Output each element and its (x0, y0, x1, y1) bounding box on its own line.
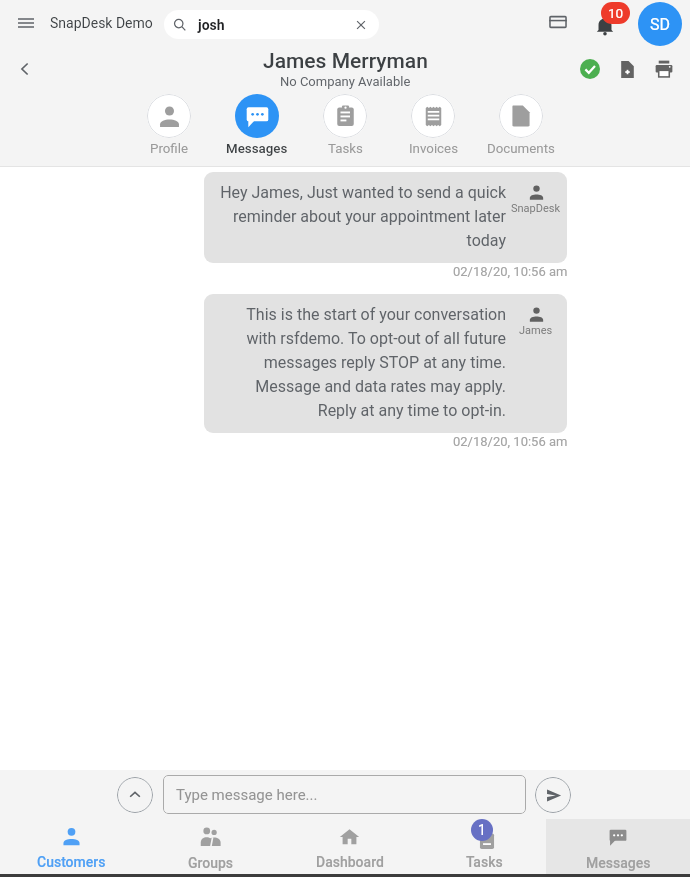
button[interactable]: Hey James, Just wanted to send a quick r… (204, 172, 567, 263)
button[interactable]: Menu (13, 11, 39, 37)
button[interactable]: Print (649, 54, 679, 84)
button[interactable]: Send (535, 777, 571, 813)
button[interactable]: Messages (546, 819, 690, 874)
staticText: James (519, 324, 553, 337)
staticText: No Company Available (280, 74, 411, 89)
button[interactable]: Profile (125, 89, 213, 157)
button[interactable]: Invoices (389, 89, 477, 157)
staticText: SD (650, 15, 670, 34)
staticText: Profile (150, 141, 189, 157)
staticText: SnapDesk Demo (50, 15, 153, 31)
staticText: Invoices (409, 141, 458, 157)
button[interactable]: Dashboard (281, 819, 418, 874)
button[interactable]: Account (638, 2, 682, 46)
button[interactable]: Documents (477, 89, 565, 157)
button[interactable]: Tasks (301, 89, 389, 157)
button[interactable]: Notifications (588, 7, 622, 41)
staticText: 02/18/20, 10:56 am (453, 264, 568, 279)
button[interactable]: New document (612, 54, 642, 84)
staticText: Type message here... (176, 786, 318, 804)
staticText: Messages (586, 855, 651, 871)
staticText: Hey James, Just wanted to send a quick r… (216, 183, 506, 250)
staticText: This is the start of your conversation w… (216, 305, 506, 420)
button[interactable]: This is the start of your conversation w… (204, 294, 567, 433)
staticText: Tasks (328, 141, 363, 157)
button[interactable]: Type message here... (163, 775, 526, 814)
staticText: Customers (37, 854, 106, 870)
staticText: Tasks (466, 854, 503, 870)
staticText: SnapDesk (511, 202, 561, 215)
staticText: Documents (487, 141, 555, 157)
staticText: Messages (226, 141, 288, 157)
staticText: 02/18/20, 10:56 am (453, 434, 568, 449)
staticText: josh (198, 17, 354, 33)
button[interactable]: josh (164, 10, 379, 39)
button[interactable]: Billing (541, 7, 575, 41)
button[interactable]: Back (10, 54, 40, 84)
button[interactable]: Expand (117, 777, 153, 813)
button[interactable]: Customers (3, 819, 140, 874)
button[interactable]: Mark complete (575, 54, 605, 84)
button[interactable]: 1 (416, 819, 553, 874)
staticText: 1 (478, 822, 486, 838)
staticText: Groups (188, 855, 234, 871)
staticText: Dashboard (316, 854, 384, 870)
button[interactable]: Groups (142, 819, 279, 874)
button[interactable]: Messages (213, 89, 301, 157)
staticText: 10 (608, 5, 624, 21)
staticText: James Merryman (263, 49, 428, 74)
